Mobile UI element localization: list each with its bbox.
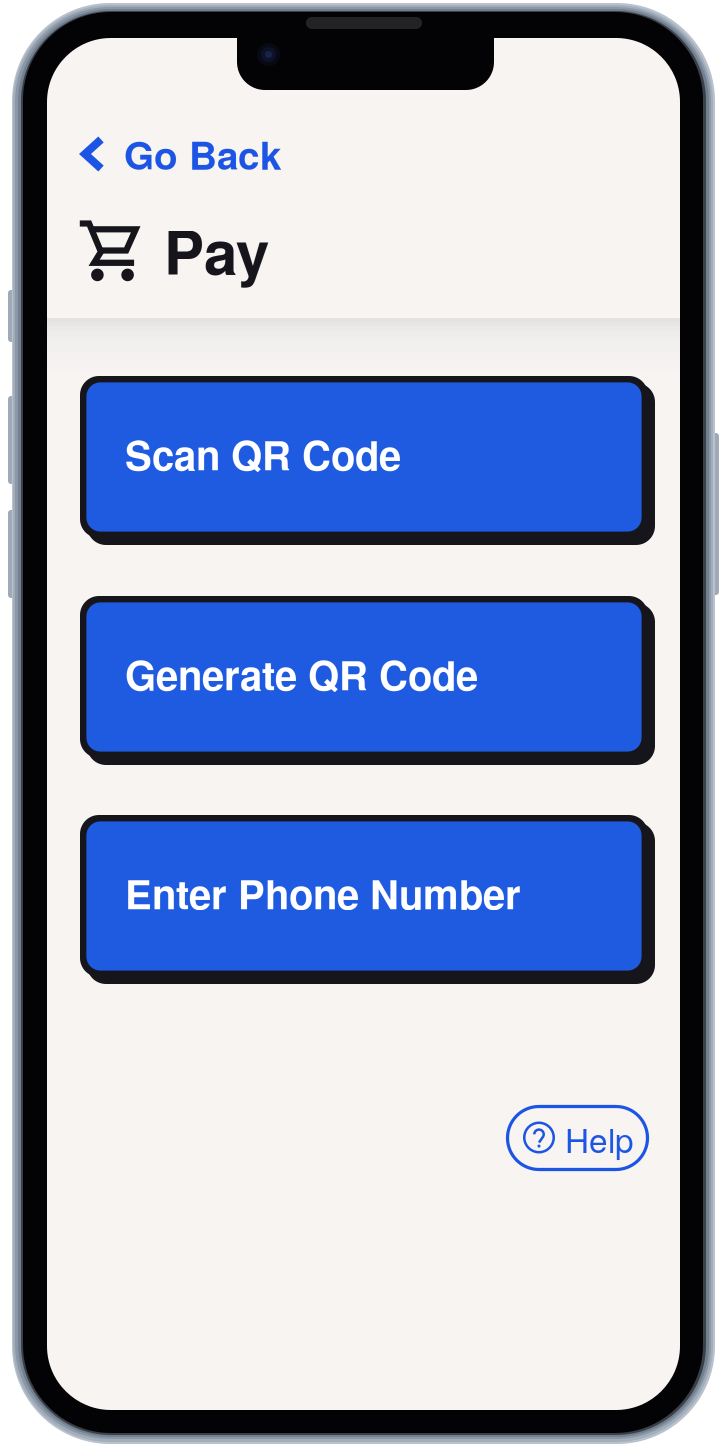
button[interactable]: Scan QR Code [80,376,655,545]
staticText: Scan QR Code [125,425,401,483]
staticText: Go Back [124,126,281,182]
staticText: Pay [164,207,269,293]
button[interactable]: Enter Phone Number [80,815,655,984]
staticText: Help [565,1115,634,1162]
button[interactable]: Generate QR Code [80,596,655,765]
staticText: Generate QR Code [125,645,478,703]
staticText: Enter Phone Number [125,864,521,922]
button[interactable]: Go Back [80,127,380,181]
button[interactable]: Help [507,1106,647,1169]
